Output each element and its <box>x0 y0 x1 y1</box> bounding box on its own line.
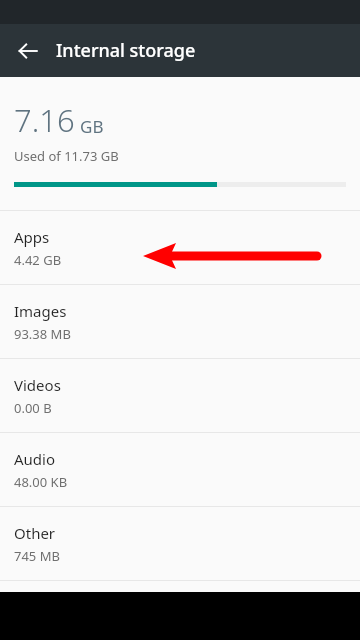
staticText: Internal storage <box>56 38 196 63</box>
button[interactable]: Audio <box>0 433 360 506</box>
staticText: 48.00 KB <box>14 473 68 491</box>
button[interactable]: Apps <box>0 211 360 284</box>
staticText: Videos <box>14 375 61 395</box>
staticText: Audio <box>14 449 56 469</box>
staticText: GB <box>80 115 104 138</box>
staticText: Other <box>14 523 56 543</box>
staticText: 0.00 B <box>14 399 52 417</box>
staticText: 4.42 GB <box>14 251 62 269</box>
staticText: Apps <box>14 227 50 247</box>
staticText: 745 MB <box>14 547 60 565</box>
button[interactable]: Other <box>0 507 360 580</box>
button[interactable]: Videos <box>0 359 360 432</box>
button[interactable]: Images <box>0 285 360 358</box>
staticText: Used of 11.73 GB <box>14 147 119 165</box>
staticText: Images <box>14 301 67 321</box>
staticText: 7.16 <box>14 99 75 141</box>
button[interactable]: Back <box>10 33 46 69</box>
staticText: 93.38 MB <box>14 325 71 343</box>
